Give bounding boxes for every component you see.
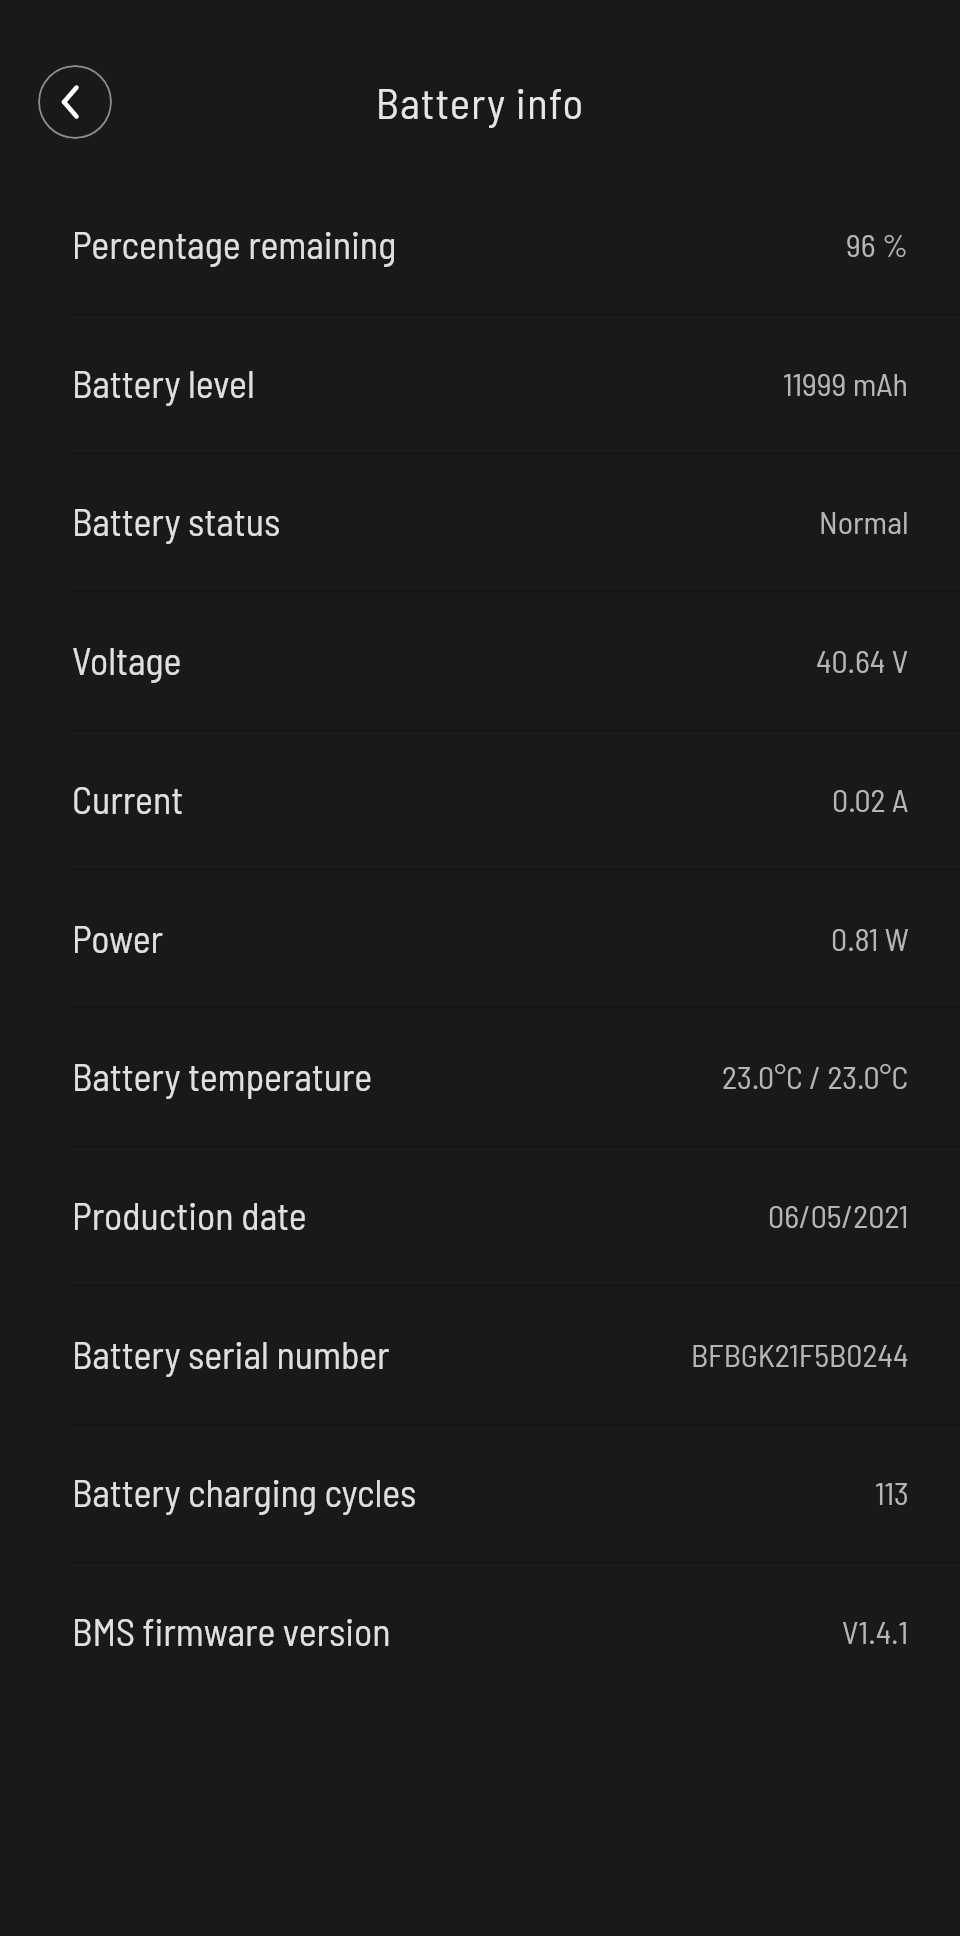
staticText: Voltage [72, 637, 182, 683]
staticText: Power [72, 915, 164, 961]
staticText: Battery status [72, 498, 281, 544]
staticText: 06/05/2021 [768, 1196, 909, 1234]
staticText: Current [72, 776, 184, 822]
staticText: Percentage remaining [72, 221, 397, 267]
staticText: 23.0°C / 23.0°C [722, 1057, 909, 1095]
button[interactable]: Percentage remaining [0, 174, 960, 313]
staticText: Normal [819, 502, 909, 540]
button[interactable]: Power [0, 868, 960, 1007]
button[interactable]: Battery level [0, 313, 960, 452]
staticText: BMS firmware version [72, 1608, 391, 1654]
button[interactable]: BMS firmware version [0, 1561, 960, 1700]
button[interactable]: Battery charging cycles [0, 1422, 960, 1561]
staticText: 0.81 W [831, 919, 909, 957]
staticText: Battery temperature [72, 1053, 373, 1099]
button[interactable]: Back [38, 65, 112, 139]
staticText: Battery info [0, 76, 960, 128]
staticText: Battery serial number [72, 1331, 390, 1377]
button[interactable]: Battery temperature [0, 1006, 960, 1145]
staticText: 40.64 V [816, 641, 909, 679]
staticText: Production date [72, 1192, 307, 1238]
staticText: 113 [875, 1473, 909, 1511]
staticText: 0.02 A [832, 780, 909, 818]
staticText: V1.4.1 [842, 1612, 909, 1650]
button[interactable]: Production date [0, 1145, 960, 1284]
button[interactable]: Battery status [0, 451, 960, 590]
staticText: Battery charging cycles [72, 1469, 417, 1515]
staticText: BFBGK21F5B0244 [691, 1335, 909, 1373]
button[interactable]: Battery serial number [0, 1284, 960, 1423]
staticText: 96 % [846, 225, 909, 263]
staticText: 11999 mAh [783, 364, 909, 402]
button[interactable]: Current [0, 729, 960, 868]
staticText: Battery level [72, 360, 255, 406]
button[interactable]: Voltage [0, 590, 960, 729]
